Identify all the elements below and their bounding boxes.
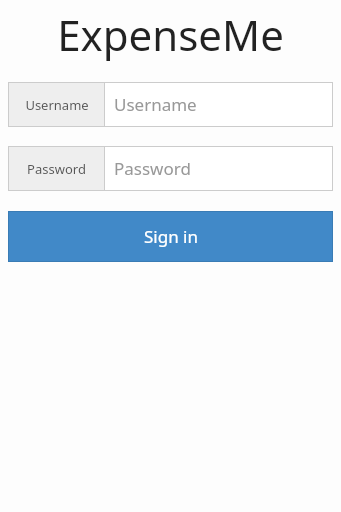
staticText: ExpenseMe <box>57 6 284 63</box>
staticText: Sign in <box>144 225 198 248</box>
staticText: Username <box>114 93 197 116</box>
staticText: Password <box>114 157 191 180</box>
staticText: Username <box>25 96 89 114</box>
button[interactable]: Username <box>8 82 333 127</box>
button[interactable]: Sign in <box>9 212 332 261</box>
staticText: Password <box>27 160 86 178</box>
button[interactable]: Password <box>8 146 333 191</box>
